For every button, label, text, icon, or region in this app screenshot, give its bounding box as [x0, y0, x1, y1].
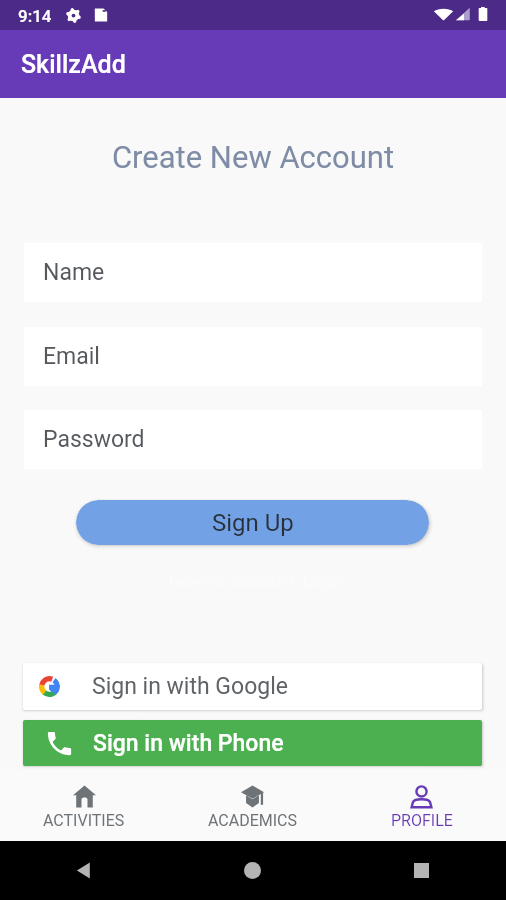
staticText: Sign Up [212, 509, 294, 537]
staticText: ACADEMICS [208, 811, 298, 830]
staticText: Sign in with Phone [93, 730, 284, 757]
staticText: PROFILE [391, 811, 453, 830]
staticText: Sign in with Google [92, 673, 288, 700]
button[interactable]: PROFILE [337, 770, 506, 841]
button[interactable]: Home [244, 862, 261, 879]
button[interactable]: Back [75, 861, 94, 880]
staticText: SkillzAdd [21, 50, 126, 79]
staticText: ACTIVITIES [43, 811, 125, 830]
button[interactable]: ACTIVITIES [0, 770, 168, 841]
button[interactable]: Sign Up [76, 500, 429, 545]
staticText: 9:14 [18, 6, 52, 26]
button[interactable]: Sign in with Google [23, 663, 482, 710]
staticText: Create New Account [0, 139, 506, 175]
button[interactable]: Sign in with Phone [23, 720, 482, 766]
staticText: Email [43, 343, 100, 370]
button[interactable]: Name [24, 243, 482, 302]
staticText: Name [43, 259, 105, 286]
button[interactable]: Password [24, 410, 482, 469]
button[interactable]: Email [24, 327, 482, 386]
staticText: Password [43, 426, 145, 453]
button[interactable]: ACADEMICS [168, 770, 337, 841]
